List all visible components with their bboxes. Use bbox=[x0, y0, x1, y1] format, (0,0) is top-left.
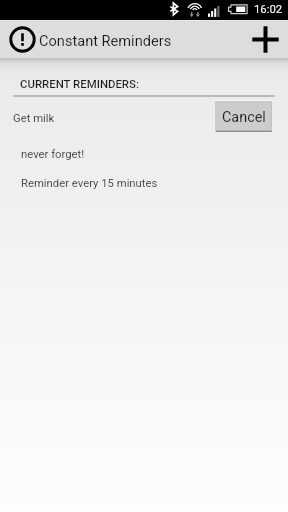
staticText: Reminder every 15 minutes bbox=[21, 177, 158, 190]
button[interactable]: Cancel bbox=[215, 100, 272, 132]
staticText: Cancel bbox=[222, 109, 266, 126]
staticText: Constant Reminders bbox=[39, 32, 172, 49]
staticText: Get milk bbox=[13, 112, 55, 125]
staticText: 16:02 bbox=[254, 3, 283, 16]
button[interactable]: Add reminder bbox=[243, 20, 288, 58]
staticText: never forget! bbox=[21, 148, 85, 161]
staticText: CURRENT REMINDERS: bbox=[20, 77, 139, 90]
